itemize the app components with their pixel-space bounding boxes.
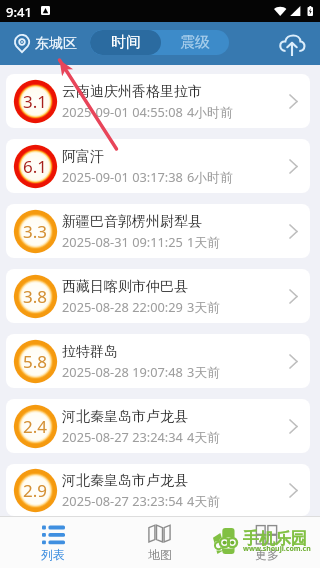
button[interactable]: 3.8 [6, 269, 310, 323]
staticText: 云南迪庆州香格里拉市 [62, 83, 202, 101]
staticText: 新疆巴音郭楞州尉犁县 [62, 213, 202, 231]
staticText: 2025-08-28 19:07:48 [62, 363, 183, 380]
staticText: 2025-09-01 03:17:38 [62, 168, 183, 185]
staticText: 阿富汗 [62, 148, 104, 166]
staticText: 手机乐园 [243, 529, 307, 549]
button[interactable]: 5.8 [6, 334, 310, 388]
staticText: 列表 [41, 547, 65, 562]
staticText: 东城区 [35, 35, 77, 53]
button[interactable]: 更多 [213, 517, 320, 568]
staticText: 更多 [255, 547, 279, 562]
staticText: 地图 [148, 547, 172, 562]
button[interactable]: 6.1 [6, 139, 310, 193]
staticText: 4小时前 [187, 103, 233, 120]
staticText: 4天前 [187, 492, 220, 509]
staticText: 3.3 [23, 220, 48, 243]
button[interactable]: 震级 [161, 30, 229, 55]
button[interactable]: 3.3 [6, 204, 310, 258]
staticText: 2025-08-31 09:11:25 [62, 233, 183, 250]
staticText: 2.4 [23, 415, 48, 438]
button[interactable]: Upload to cloud [274, 26, 310, 62]
staticText: www.shouji.com.cn [243, 544, 311, 554]
staticText: 西藏日喀则市仲巴县 [62, 278, 188, 296]
button[interactable]: 地图 [106, 517, 213, 568]
staticText: 3天前 [187, 298, 220, 315]
staticText: 2025-08-28 22:00:29 [62, 298, 183, 315]
staticText: 6.1 [23, 155, 48, 178]
button[interactable]: 列表 [0, 517, 106, 568]
button[interactable]: 2.9 [6, 464, 310, 516]
staticText: 河北秦皇岛市卢龙县 [62, 408, 188, 426]
staticText: 6小时前 [187, 168, 233, 185]
button[interactable]: 3.1 [6, 74, 310, 128]
staticText: 1天前 [187, 233, 220, 250]
staticText: 2025-08-27 23:24:34 [62, 428, 183, 445]
staticText: 震级 [180, 33, 210, 52]
button[interactable]: 时间 [90, 30, 161, 55]
button[interactable]: 2.4 [6, 399, 310, 453]
staticText: 4天前 [187, 428, 220, 445]
staticText: 2.9 [23, 479, 48, 502]
staticText: 3.1 [23, 90, 48, 113]
staticText: 5.8 [23, 350, 48, 373]
button[interactable]: 东城区 [14, 34, 77, 53]
staticText: 2025-09-01 04:55:08 [62, 103, 183, 120]
staticText: 9:41 [6, 3, 32, 21]
staticText: 2025-08-27 23:23:54 [62, 492, 183, 509]
staticText: 时间 [111, 33, 141, 52]
staticText: 拉特群岛 [62, 343, 118, 361]
staticText: 3.8 [23, 285, 48, 308]
staticText: 河北秦皇岛市卢龙县 [62, 472, 188, 490]
staticText: 3天前 [187, 363, 220, 380]
